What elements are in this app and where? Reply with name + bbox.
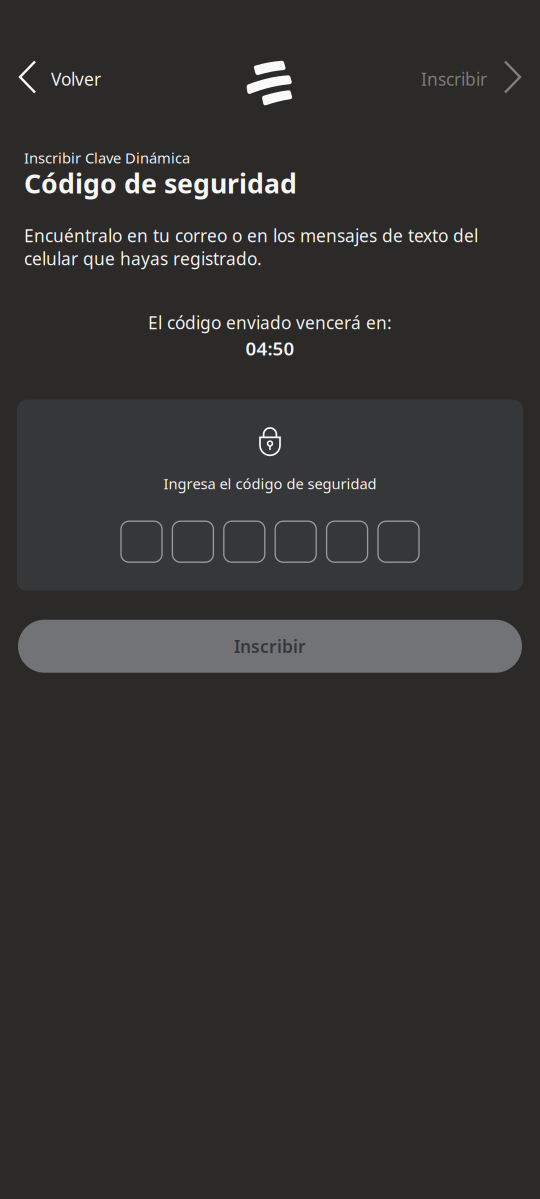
button[interactable]: Dígito 2 [172,521,213,562]
staticText: Inscribir Clave Dinámica [24,148,190,167]
button[interactable]: Dígito 3 [224,521,265,562]
staticText: Código de seguridad [24,165,297,201]
button[interactable]: Inscribir [421,53,540,112]
staticText: El código enviado vencerá en: [148,311,392,334]
staticText: Volver [51,67,101,90]
staticText: Encuéntralo en tu correo o en los mensaj… [24,224,478,270]
button[interactable]: Inscribir [18,620,522,673]
button[interactable]: Dígito 1 [121,521,162,562]
button[interactable]: Dígito 5 [327,521,368,562]
staticText: Ingresa el código de seguridad [163,474,376,493]
staticText: Inscribir [234,635,306,658]
staticText: 04:50 [245,336,294,361]
button[interactable]: Dígito 4 [275,521,316,562]
button[interactable]: Volver [0,53,101,112]
staticText: Inscribir [421,67,487,90]
button[interactable]: Dígito 6 [378,521,419,562]
